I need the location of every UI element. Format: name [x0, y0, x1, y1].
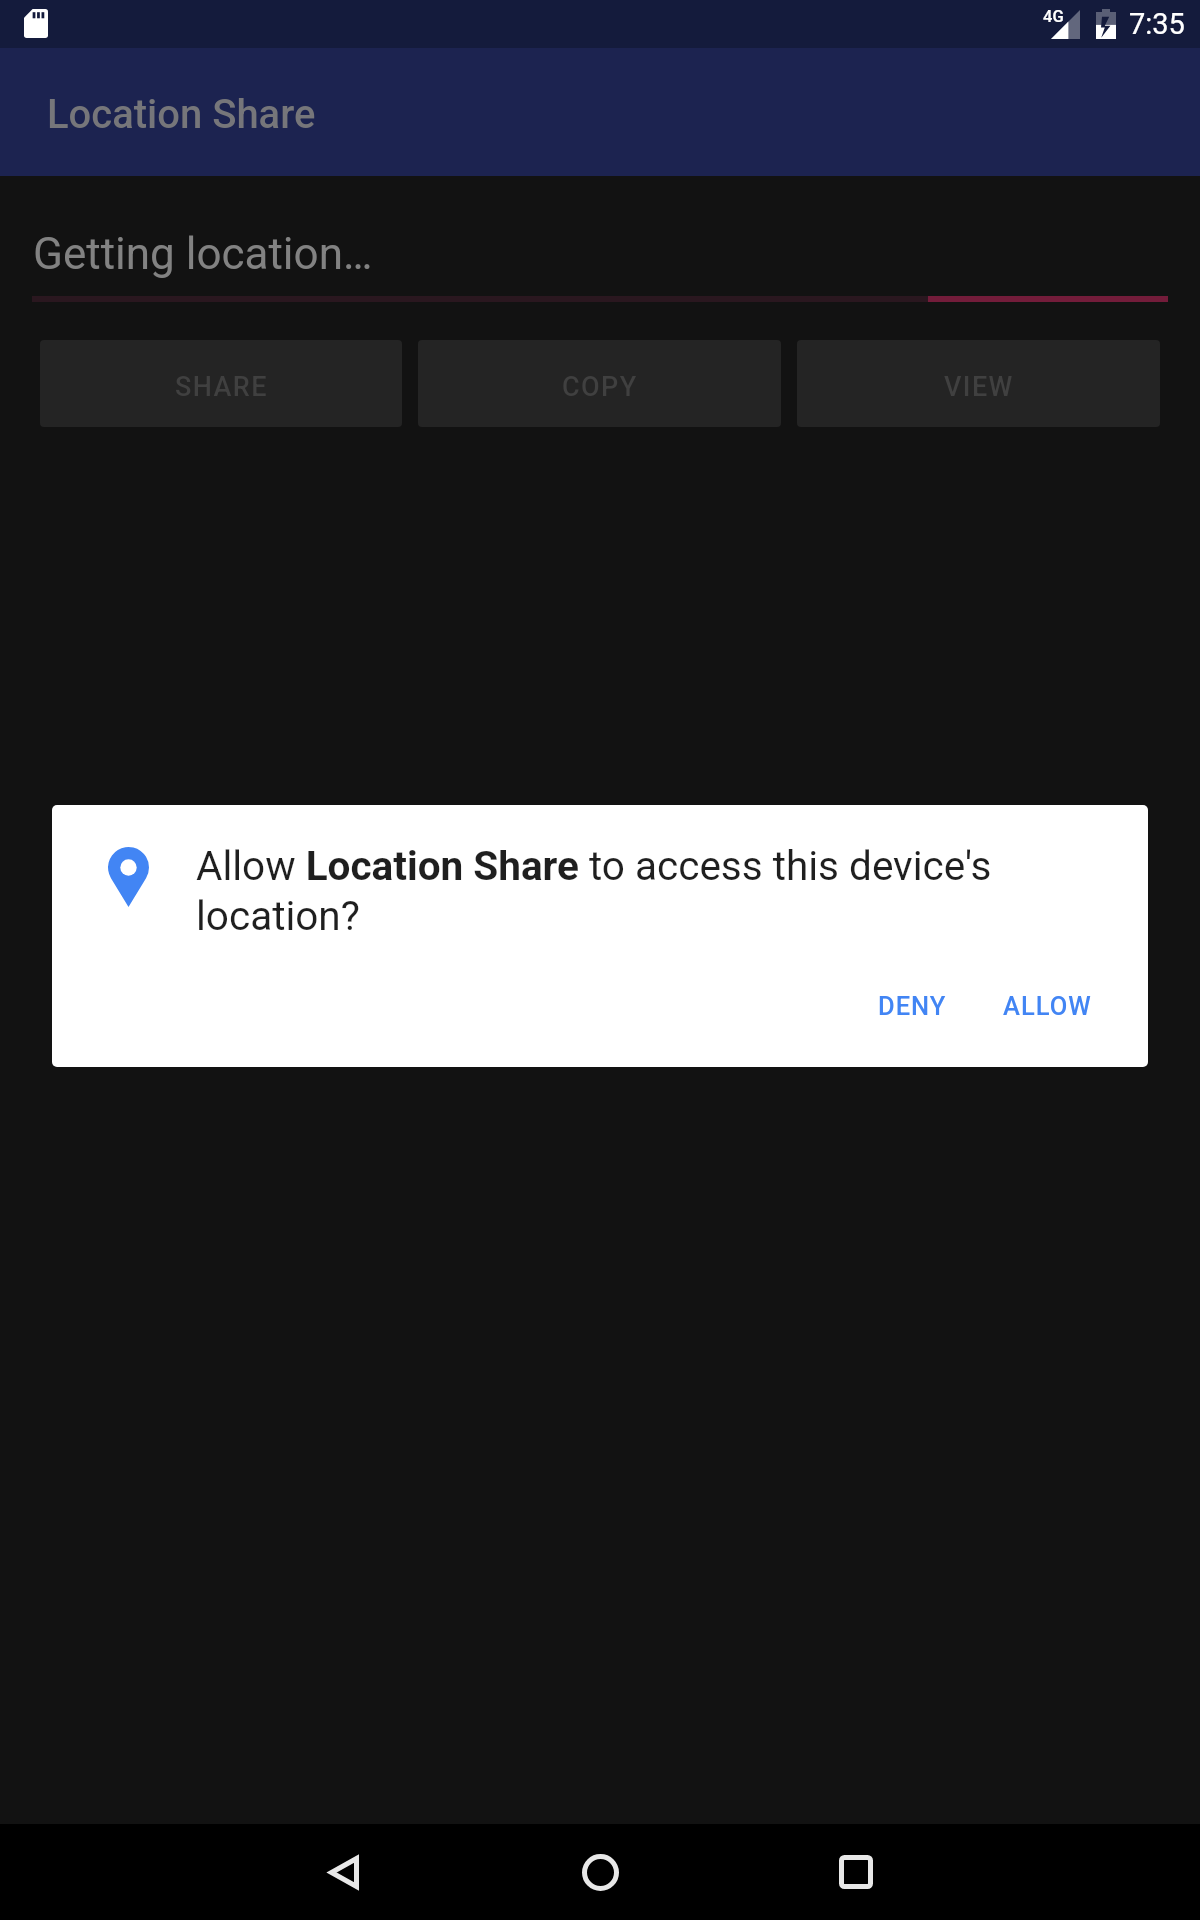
button[interactable]: Recent apps — [802, 1824, 910, 1920]
button[interactable]: COPY — [418, 340, 781, 427]
button[interactable]: VIEW — [797, 340, 1160, 427]
staticText: COPY — [562, 371, 638, 403]
staticText: ALLOW — [1003, 991, 1092, 1021]
staticText: 7:35 — [1129, 7, 1185, 41]
staticText: DENY — [878, 991, 947, 1021]
staticText: VIEW — [944, 371, 1014, 403]
staticText: Allow Location Share to access this devi… — [196, 842, 1036, 939]
staticText: 4G — [1043, 7, 1064, 26]
button[interactable]: Back — [290, 1824, 398, 1920]
button[interactable]: ALLOW — [987, 977, 1108, 1035]
button[interactable]: SHARE — [40, 340, 402, 427]
staticText: Getting location… — [33, 228, 373, 280]
staticText: Location Share — [47, 91, 316, 138]
button[interactable]: DENY — [862, 977, 963, 1035]
staticText: SHARE — [175, 371, 268, 403]
button[interactable]: Home — [546, 1824, 654, 1920]
